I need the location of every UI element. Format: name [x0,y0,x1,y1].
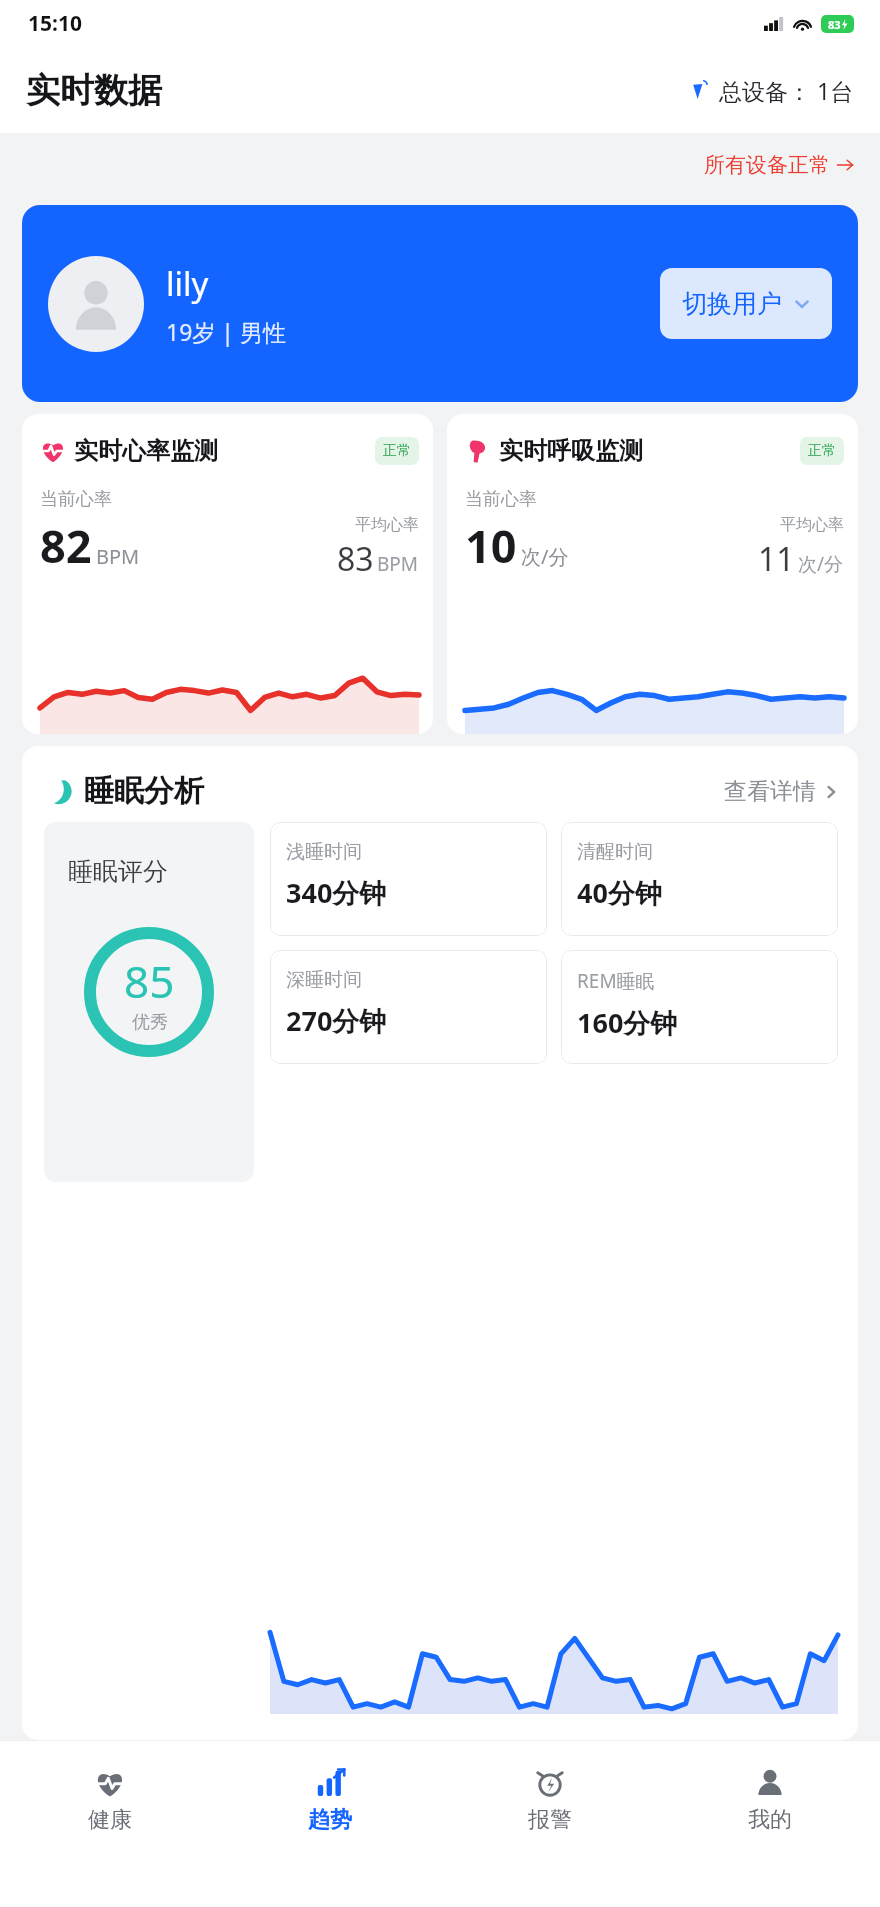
staticText: 次/分 [798,551,844,577]
staticText: lily [166,261,209,306]
button[interactable]: 切换用户 [660,268,832,339]
button[interactable]: 趋势 [220,1741,440,1859]
staticText: 15:10 [28,9,82,38]
button[interactable]: 浅睡时间 [270,822,547,936]
button[interactable]: lily [22,205,858,402]
button[interactable]: 深睡时间 [270,950,547,1064]
staticText: 次/分 [521,543,569,570]
staticText: 10 [465,515,517,576]
button[interactable]: 查看详情 [724,777,838,806]
staticText: 实时心率监测 [74,436,218,466]
staticText: 83 [828,17,841,32]
staticText: 我的 [748,1806,792,1834]
button[interactable]: 报警 [440,1741,660,1859]
staticText: 总设备： 1台 [719,75,854,106]
staticText: 当前心率 [40,488,112,511]
staticText: REM睡眠 [577,968,655,994]
staticText: 健康 [88,1806,132,1834]
staticText: 所有设备正常 [704,152,830,178]
staticText: 实时数据 [26,69,162,112]
staticText: 270分钟 [286,1002,387,1039]
staticText: 实时呼吸监测 [499,436,643,466]
staticText: 40分钟 [577,874,662,911]
staticText: 当前心率 [465,488,537,511]
staticText: BPM [96,543,140,570]
staticText: 340分钟 [286,874,387,911]
staticText: BPM [377,551,419,577]
staticText: 83 [337,537,374,581]
button[interactable]: 我的 [660,1741,880,1859]
button[interactable]: 总设备： 1台 [691,75,854,106]
staticText: 160分钟 [577,1004,678,1041]
staticText: 睡眠分析 [84,772,204,810]
staticText: 查看详情 [724,777,816,806]
staticText: 清醒时间 [577,840,653,864]
staticText: 11 [758,537,795,581]
button[interactable]: 所有设备正常 [704,152,854,178]
button[interactable]: 健康 [0,1741,220,1859]
button[interactable]: 实时呼吸监测 [447,414,858,734]
button[interactable]: 睡眠分析 [22,746,858,1740]
staticText: 85 [124,951,175,1011]
staticText: 82 [40,515,92,576]
button[interactable]: 实时心率监测 [22,414,433,734]
staticText: 正常 [383,442,411,460]
staticText: 平均心率 [355,515,419,535]
staticText: 浅睡时间 [286,840,362,864]
staticText: 切换用户 [682,288,782,319]
staticText: 深睡时间 [286,968,362,992]
staticText: 19岁 | 男性 [166,316,286,347]
staticText: 报警 [528,1806,572,1834]
button[interactable]: REM睡眠 [561,950,838,1064]
staticText: 趋势 [308,1806,352,1834]
staticText: 正常 [808,442,836,460]
staticText: 平均心率 [780,515,844,535]
staticText: 优秀 [132,1011,168,1034]
button[interactable]: 清醒时间 [561,822,838,936]
staticText: 睡眠评分 [68,856,168,887]
